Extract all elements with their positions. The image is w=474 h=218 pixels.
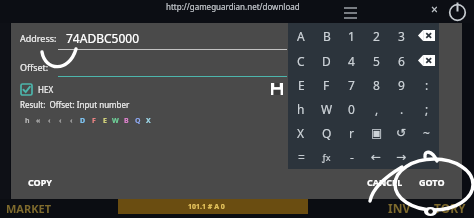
button[interactable]: D xyxy=(314,48,339,73)
button[interactable]: F xyxy=(88,115,99,127)
button[interactable]: W xyxy=(314,97,339,121)
button[interactable]: X xyxy=(143,115,154,127)
staticText: MARKET xyxy=(6,201,52,216)
button[interactable] xyxy=(414,145,439,169)
button[interactable]: ~ xyxy=(414,121,439,145)
button[interactable]: → xyxy=(389,145,414,169)
staticText: B xyxy=(124,116,129,126)
staticText: F xyxy=(323,77,330,93)
staticText: E xyxy=(103,116,107,126)
staticText: Q xyxy=(135,116,141,126)
button[interactable]: ‹ xyxy=(55,115,66,127)
staticText: 5 xyxy=(373,53,380,69)
button[interactable]: : xyxy=(414,73,439,97)
button[interactable]: ƒx xyxy=(314,145,339,169)
staticText: ‹ xyxy=(59,116,62,126)
staticText: 8 xyxy=(373,77,380,93)
staticText: 101.1 # A 0 xyxy=(188,202,225,212)
button[interactable]: Q xyxy=(132,115,143,127)
button[interactable]: F xyxy=(314,73,339,97)
staticText: 0 xyxy=(348,101,355,117)
staticText: → xyxy=(396,150,407,164)
staticText: 9 xyxy=(398,77,405,93)
button[interactable]: h xyxy=(22,115,33,127)
staticText: X xyxy=(297,125,305,141)
button[interactable]: 1 xyxy=(339,23,364,48)
staticText: 3 xyxy=(398,28,405,44)
staticText: ; xyxy=(425,101,429,117)
button[interactable]: C xyxy=(288,48,314,73)
button[interactable]: ↺ xyxy=(389,121,414,145)
button[interactable]: B xyxy=(314,23,339,48)
button[interactable]: E xyxy=(288,73,314,97)
staticText: W xyxy=(321,101,333,117)
button[interactable]: HEX xyxy=(21,80,54,98)
button[interactable]: COPY xyxy=(17,169,63,194)
button[interactable]: CANCEL xyxy=(359,169,411,194)
button[interactable]: h xyxy=(288,97,314,121)
button[interactable]: Offset: xyxy=(20,58,287,76)
button[interactable]: , xyxy=(364,97,389,121)
staticText: - xyxy=(350,149,354,165)
button[interactable]: ← xyxy=(364,145,389,169)
staticText: Result: Offset: Input number xyxy=(20,99,130,110)
staticText: « xyxy=(36,116,41,126)
staticText: CANCEL xyxy=(367,176,403,188)
button[interactable]: A xyxy=(288,23,314,48)
button[interactable]: 7 xyxy=(339,73,364,97)
staticText: : xyxy=(425,77,429,93)
button[interactable]: . xyxy=(389,97,414,121)
button[interactable]: 0 xyxy=(339,97,364,121)
button[interactable]: 4 xyxy=(339,48,364,73)
staticText: 2 xyxy=(373,28,380,44)
staticText: . xyxy=(400,101,404,117)
button[interactable]: D xyxy=(77,115,88,127)
staticText: ← xyxy=(371,150,382,164)
staticText: h xyxy=(297,101,305,117)
staticText: X xyxy=(146,116,151,126)
button[interactable]: - xyxy=(339,145,364,169)
button[interactable]: B xyxy=(121,115,132,127)
button[interactable]: ‹ xyxy=(44,115,55,127)
staticText: E xyxy=(298,77,305,93)
staticText: , xyxy=(375,101,379,117)
staticText: F xyxy=(92,116,96,126)
staticText: ƒx xyxy=(322,151,331,163)
staticText: Address: xyxy=(20,32,57,44)
button[interactable]: Save xyxy=(266,78,287,99)
staticText: ↺ xyxy=(396,126,407,140)
staticText: GOTO xyxy=(419,176,445,188)
button[interactable]: ; xyxy=(414,97,439,121)
staticText: TORY xyxy=(434,200,466,216)
button[interactable]: Backspace xyxy=(414,23,439,48)
button[interactable]: W xyxy=(110,115,121,127)
button[interactable]: 9 xyxy=(389,73,414,97)
button[interactable]: 8 xyxy=(364,73,389,97)
button[interactable]: X xyxy=(288,121,314,145)
button[interactable]: 6 xyxy=(389,48,414,73)
button[interactable]: = xyxy=(288,145,314,169)
button[interactable]: Address: xyxy=(20,27,287,48)
button[interactable]: 5 xyxy=(364,48,389,73)
button[interactable]: Q xyxy=(314,121,339,145)
staticText: http://gameguardian.net/download xyxy=(166,1,300,12)
button[interactable]: ▣ xyxy=(364,121,389,145)
button[interactable]: 2 xyxy=(364,23,389,48)
button[interactable]: 3 xyxy=(389,23,414,48)
button[interactable]: r xyxy=(339,121,364,145)
button[interactable]: E xyxy=(99,115,110,127)
staticText: HEX xyxy=(38,84,54,95)
staticText: Q xyxy=(322,125,332,141)
staticText: W xyxy=(112,116,119,126)
button[interactable]: GOTO xyxy=(410,169,454,194)
staticText: 74ADBC5000 xyxy=(66,30,139,46)
staticText: ‹ xyxy=(48,116,51,126)
button[interactable]: Backspace xyxy=(414,48,439,73)
staticText: COPY xyxy=(28,176,52,188)
staticText: ~ xyxy=(423,125,430,141)
button[interactable]: ‹ xyxy=(66,115,77,127)
staticText: Offset: xyxy=(20,61,49,73)
button[interactable]: « xyxy=(33,115,44,127)
staticText: ‹ xyxy=(70,116,73,126)
staticText: r xyxy=(349,125,354,141)
